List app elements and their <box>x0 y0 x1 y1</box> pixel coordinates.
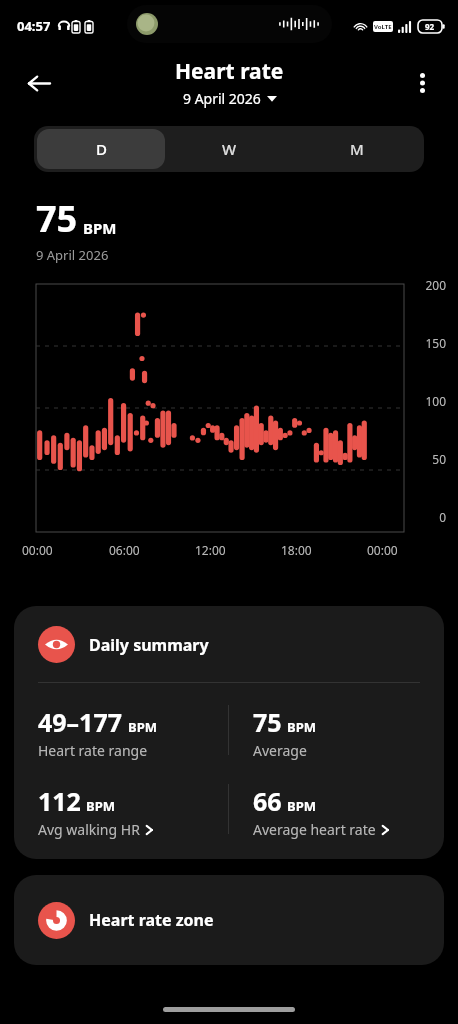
staticText: BPM <box>86 797 115 815</box>
staticText: 00:00 <box>22 542 109 558</box>
staticText: BPM <box>287 718 316 736</box>
button[interactable]: 112 <box>38 784 228 839</box>
staticText: 200 <box>425 277 446 293</box>
button[interactable]: 75 <box>229 705 420 760</box>
staticText: VoLTE <box>374 23 392 31</box>
button[interactable]: Heart rate zone <box>14 875 444 965</box>
button[interactable]: 49–177 <box>38 705 228 760</box>
button[interactable]: M <box>293 129 421 169</box>
staticText: 75 <box>36 194 78 243</box>
button[interactable]: 66 <box>229 784 420 839</box>
staticText: 0 <box>439 509 446 525</box>
staticText: Heart rate range <box>38 741 148 760</box>
button[interactable]: D <box>37 129 165 169</box>
button[interactable]: Daily summary <box>14 606 444 859</box>
staticText: 9 April 2026 <box>36 246 109 264</box>
staticText: Average <box>253 741 307 760</box>
staticText: Avg walking HR <box>38 820 140 839</box>
staticText: BPM <box>83 218 117 238</box>
staticText: 00:00 <box>367 542 420 558</box>
staticText: 18:00 <box>281 542 367 558</box>
button[interactable]: 9 April 2026 <box>179 88 281 109</box>
staticText: 66 <box>253 784 282 818</box>
staticText: BPM <box>287 797 316 815</box>
staticText: Average heart rate <box>253 820 376 839</box>
button[interactable]: W <box>165 129 293 169</box>
staticText: 50 <box>432 451 446 467</box>
button[interactable]: More options <box>400 61 444 105</box>
staticText: 06:00 <box>109 542 195 558</box>
staticText: 9 April 2026 <box>183 89 261 108</box>
staticText: BPM <box>128 718 157 736</box>
staticText: 04:57 <box>17 17 51 35</box>
staticText: W <box>222 139 237 159</box>
staticText: D <box>96 139 107 159</box>
staticText: 150 <box>425 335 446 351</box>
staticText: 92 <box>425 21 435 32</box>
staticText: Heart rate zone <box>89 909 214 931</box>
staticText: M <box>350 139 364 159</box>
staticText: 12:00 <box>195 542 281 558</box>
staticText: 49–177 <box>38 705 123 739</box>
staticText: Daily summary <box>89 634 209 656</box>
staticText: Heart rate <box>175 57 284 86</box>
staticText: 112 <box>38 784 81 818</box>
staticText: 75 <box>253 705 282 739</box>
staticText: 100 <box>425 393 446 409</box>
button[interactable]: Back <box>16 60 62 106</box>
